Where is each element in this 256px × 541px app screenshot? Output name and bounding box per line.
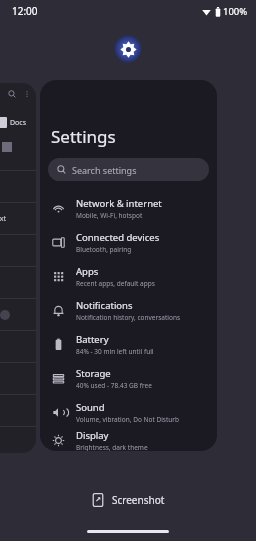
staticText: Bluetooth, pairing: [76, 245, 132, 254]
button[interactable]: Screenshot: [83, 489, 173, 511]
staticText: ext: [0, 214, 7, 224]
staticText: Display: [76, 429, 109, 442]
button[interactable]: Display: [40, 429, 217, 451]
staticText: Battery: [76, 333, 109, 346]
staticText: Sound: [76, 401, 105, 414]
staticText: Apps: [76, 265, 99, 278]
staticText: 40% used - 78.43 GB free: [76, 381, 152, 390]
staticText: Network & internet: [76, 197, 162, 210]
staticText: Brightness, dark theme: [76, 443, 148, 451]
staticText: Recent apps, default apps: [76, 279, 155, 288]
button[interactable]: Network & internet: [40, 191, 217, 225]
staticText: Notifications: [76, 299, 133, 312]
button[interactable]: Battery: [40, 327, 217, 361]
staticText: Notification history, conversations: [76, 313, 181, 322]
staticText: Volume, vibration, Do Not Disturb: [76, 415, 180, 424]
staticText: Mobile, Wi-Fi, hotspot: [76, 211, 143, 220]
staticText: 100%: [223, 5, 248, 18]
staticText: 12:00: [12, 4, 38, 18]
staticText: Storage: [76, 367, 111, 380]
button[interactable]: Settings app icon: [114, 35, 142, 63]
staticText: Docs: [10, 118, 27, 128]
button[interactable]: Search settings: [48, 158, 209, 181]
staticText: Connected devices: [76, 231, 160, 244]
button[interactable]: Storage: [40, 361, 217, 395]
staticText: Search settings: [72, 164, 137, 176]
staticText: Settings: [51, 125, 116, 148]
button[interactable]: Docs: [0, 83, 36, 453]
button[interactable]: Apps: [40, 259, 217, 293]
button[interactable]: Connected devices: [40, 225, 217, 259]
staticText: 84% - 30 min left until full: [76, 347, 154, 356]
button[interactable]: Sound: [40, 395, 217, 429]
button[interactable]: Notifications: [40, 293, 217, 327]
staticText: Screenshot: [112, 493, 165, 507]
